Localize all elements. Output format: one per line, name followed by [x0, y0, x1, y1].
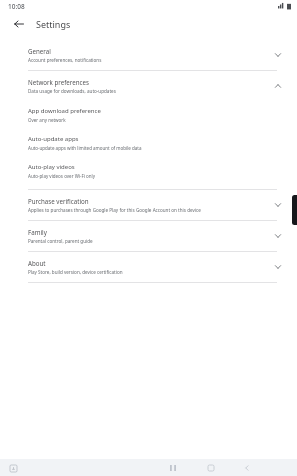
staticText: Applies to purchases through Google Play…	[28, 207, 201, 213]
button[interactable]: Home	[205, 462, 217, 474]
staticText: Auto-play videos over Wi-Fi only	[28, 173, 96, 179]
other: Expand	[271, 229, 285, 243]
button[interactable]: Auto-update apps	[0, 129, 297, 157]
staticText: Over any network	[28, 117, 66, 123]
staticText: Data usage for downloads, auto-updates	[28, 88, 116, 94]
staticText: Family	[28, 228, 47, 236]
staticText: Auto-play videos	[28, 163, 75, 171]
button[interactable]: Purchase verification	[0, 190, 297, 220]
staticText: Settings	[36, 18, 71, 30]
staticText: Network preferences	[28, 78, 90, 86]
other: Expand	[271, 198, 285, 212]
button[interactable]: General	[0, 40, 297, 70]
staticText: Purchase verification	[28, 197, 89, 205]
staticText: Auto-update apps with limited amount of …	[28, 145, 142, 151]
button[interactable]: Network preferences	[0, 71, 297, 101]
button[interactable]: App download preference	[0, 101, 297, 129]
staticText: App download preference	[28, 107, 101, 115]
staticText: Auto-update apps	[28, 135, 79, 143]
staticText: General	[28, 47, 51, 55]
staticText: About	[28, 259, 46, 267]
other: Collapse	[271, 79, 285, 93]
staticText: Play Store, build version, device certif…	[28, 269, 123, 275]
button[interactable]: Family	[0, 221, 297, 251]
button[interactable]: Back	[241, 462, 253, 474]
button[interactable]: Auto-play videos	[0, 157, 297, 185]
button[interactable]: Back	[10, 15, 28, 33]
button[interactable]: About	[0, 252, 297, 282]
staticText: Account preferences, notifications	[28, 57, 102, 63]
other: Expand	[271, 260, 285, 274]
staticText: 10:08	[8, 2, 25, 11]
staticText: Parental control, parent guide	[28, 238, 93, 244]
button[interactable]: Recent apps	[167, 462, 179, 474]
other: Expand	[271, 48, 285, 62]
button[interactable]: Keyboard	[8, 463, 18, 473]
